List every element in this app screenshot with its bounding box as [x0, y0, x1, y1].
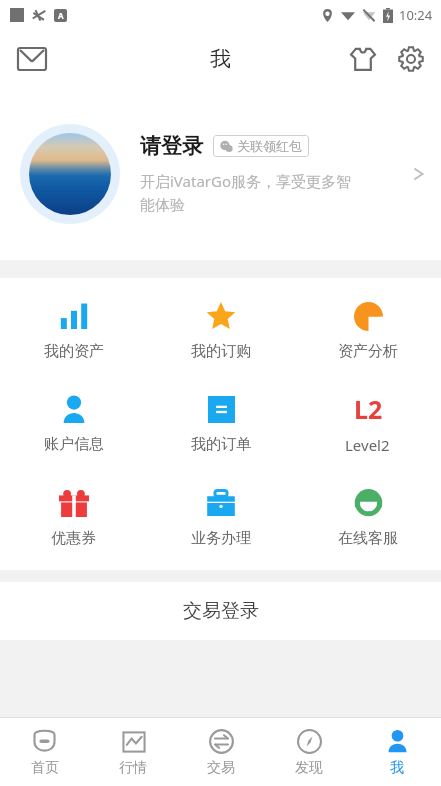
staticText: 资产分析: [338, 342, 398, 361]
staticText: 我的订单: [191, 435, 251, 454]
staticText: 首页: [31, 759, 59, 777]
button[interactable]: 优惠券: [0, 479, 147, 554]
button[interactable]: 关联领红包: [213, 135, 309, 157]
staticText: 行情: [119, 759, 147, 777]
staticText: 在线客服: [338, 529, 398, 548]
staticText: 交易登录: [183, 599, 259, 623]
staticText: 业务办理: [191, 529, 251, 548]
staticText: A: [58, 10, 64, 21]
staticText: 我的资产: [44, 342, 104, 361]
button[interactable]: 行情: [89, 722, 177, 783]
staticText: 关联领红包: [237, 138, 302, 154]
staticText: 10:24: [399, 6, 433, 24]
button[interactable]: 业务办理: [147, 479, 294, 554]
button[interactable]: 交易: [177, 722, 265, 783]
staticText: 我的订购: [191, 342, 251, 361]
staticText: 开启iVatarGo服务，享受更多智 能体验: [140, 171, 352, 215]
staticText: 我: [390, 759, 404, 777]
staticText: Level2: [345, 435, 390, 455]
button[interactable]: Theme skin: [339, 35, 387, 83]
button[interactable]: 请登录: [0, 88, 441, 260]
staticText: 发现: [295, 759, 323, 777]
button[interactable]: 我的订购: [147, 292, 294, 367]
button[interactable]: 账户信息: [0, 385, 147, 460]
button[interactable]: Settings: [387, 35, 435, 83]
button[interactable]: 我的订单: [147, 385, 294, 460]
staticText: 交易: [207, 759, 235, 777]
staticText: L2: [354, 392, 383, 426]
button[interactable]: 首页: [0, 722, 89, 783]
staticText: 账户信息: [44, 435, 104, 454]
button[interactable]: Messages: [8, 35, 56, 83]
staticText: 请登录: [140, 133, 203, 159]
staticText: 优惠券: [51, 529, 96, 548]
button[interactable]: 在线客服: [294, 479, 441, 554]
button[interactable]: 发现: [265, 722, 353, 783]
button[interactable]: 资产分析: [294, 292, 441, 367]
button[interactable]: 交易登录: [0, 582, 441, 640]
button[interactable]: 我: [353, 722, 441, 783]
button[interactable]: L2: [294, 385, 441, 461]
button[interactable]: 我的资产: [0, 292, 147, 367]
staticText: 我: [210, 46, 231, 72]
